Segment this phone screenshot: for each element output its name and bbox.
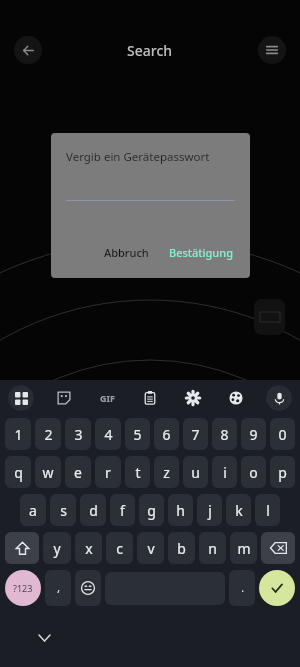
button[interactable]: 2 — [35, 418, 61, 450]
staticText: w — [42, 463, 54, 482]
button[interactable]: 3 — [65, 418, 91, 450]
staticText: o — [249, 463, 258, 482]
button[interactable]: p — [270, 456, 295, 488]
staticText: q — [14, 463, 23, 482]
button[interactable]: l — [255, 494, 280, 526]
staticText: l — [266, 501, 270, 520]
button[interactable]: Stickers — [51, 385, 77, 411]
button[interactable]: u — [183, 456, 208, 488]
staticText: f — [120, 501, 125, 520]
button[interactable]: Clipboard — [137, 385, 163, 411]
staticText: a — [29, 501, 37, 520]
button[interactable]: s — [50, 494, 76, 526]
staticText: . — [241, 581, 244, 595]
button[interactable]: q — [5, 456, 31, 488]
button[interactable]: e — [65, 456, 91, 488]
staticText: GIF — [100, 392, 115, 404]
staticText: ?123 — [13, 582, 33, 594]
button[interactable]: r — [95, 456, 121, 488]
staticText: y — [53, 539, 61, 558]
button[interactable]: 5 — [125, 418, 150, 450]
button[interactable]: y — [43, 532, 71, 564]
button[interactable]: ?123 — [5, 570, 41, 606]
staticText: x — [85, 539, 93, 558]
button[interactable]: 4 — [95, 418, 121, 450]
staticText: n — [208, 539, 217, 558]
staticText: 4 — [104, 425, 113, 444]
button[interactable]: GIF — [94, 385, 120, 411]
button[interactable]: 1 — [5, 418, 31, 450]
button[interactable]: Voice input — [266, 385, 292, 411]
staticText: h — [176, 501, 185, 520]
button[interactable]: Back — [14, 36, 42, 64]
button[interactable]: Emoji — [75, 570, 101, 606]
button[interactable]: . — [229, 570, 255, 606]
staticText: 6 — [162, 425, 171, 444]
staticText: s — [60, 501, 67, 520]
staticText: u — [191, 463, 200, 482]
button[interactable]: z — [154, 456, 179, 488]
staticText: b — [177, 539, 186, 558]
button[interactable]: d — [80, 494, 106, 526]
staticText: Abbruch — [104, 245, 149, 260]
button[interactable]: k — [226, 494, 251, 526]
button[interactable]: 9 — [241, 418, 266, 450]
button[interactable]: v — [137, 532, 164, 564]
button[interactable]: b — [168, 532, 195, 564]
button[interactable]: h — [168, 494, 193, 526]
button[interactable]: , — [45, 570, 71, 606]
staticText: g — [147, 501, 156, 520]
staticText: z — [163, 463, 170, 482]
button[interactable]: f — [110, 494, 135, 526]
staticText: 7 — [191, 425, 200, 444]
button[interactable]: w — [35, 456, 61, 488]
button[interactable]: 8 — [212, 418, 237, 450]
staticText: Bestätigung — [169, 245, 233, 260]
button[interactable]: Settings — [180, 385, 206, 411]
button[interactable]: Backspace — [261, 532, 295, 564]
staticText: e — [74, 463, 82, 482]
staticText: 1 — [14, 425, 23, 444]
staticText: 3 — [74, 425, 83, 444]
button[interactable]: 7 — [183, 418, 208, 450]
staticText: 2 — [44, 425, 53, 444]
button[interactable]: Bestätigung — [167, 241, 235, 264]
button[interactable]: Shift — [5, 532, 39, 564]
staticText: 0 — [278, 425, 287, 444]
staticText: d — [89, 501, 98, 520]
staticText: i — [223, 463, 227, 482]
button[interactable]: o — [241, 456, 266, 488]
button[interactable]: Enter — [259, 570, 295, 606]
staticText: r — [105, 463, 111, 482]
staticText: m — [237, 539, 251, 558]
staticText: Search — [127, 41, 173, 60]
button[interactable]: m — [230, 532, 257, 564]
button[interactable]: t — [125, 456, 150, 488]
button[interactable]: Abbruch — [98, 241, 155, 264]
button[interactable]: x — [75, 532, 102, 564]
button[interactable]: 0 — [270, 418, 295, 450]
button[interactable]: Device — [254, 299, 285, 335]
staticText: Vergib ein Gerätepasswort — [66, 149, 210, 165]
staticText: v — [147, 539, 155, 558]
button[interactable]: Themes — [223, 385, 249, 411]
button[interactable]: Apps — [8, 385, 34, 411]
button[interactable]: g — [139, 494, 164, 526]
staticText: c — [116, 539, 123, 558]
button[interactable]: Hide keyboard — [32, 626, 56, 650]
staticText: j — [208, 501, 212, 520]
button[interactable]: i — [212, 456, 237, 488]
button[interactable]: Menu — [258, 36, 286, 64]
staticText: 9 — [249, 425, 258, 444]
button[interactable]: 6 — [154, 418, 179, 450]
staticText: t — [135, 463, 141, 482]
button[interactable]: c — [106, 532, 133, 564]
staticText: , — [57, 581, 60, 595]
button[interactable]: j — [197, 494, 222, 526]
staticText: 8 — [220, 425, 229, 444]
button[interactable]: n — [199, 532, 226, 564]
staticText: p — [278, 463, 287, 482]
button[interactable]: a — [20, 494, 46, 526]
staticText: k — [235, 501, 243, 520]
